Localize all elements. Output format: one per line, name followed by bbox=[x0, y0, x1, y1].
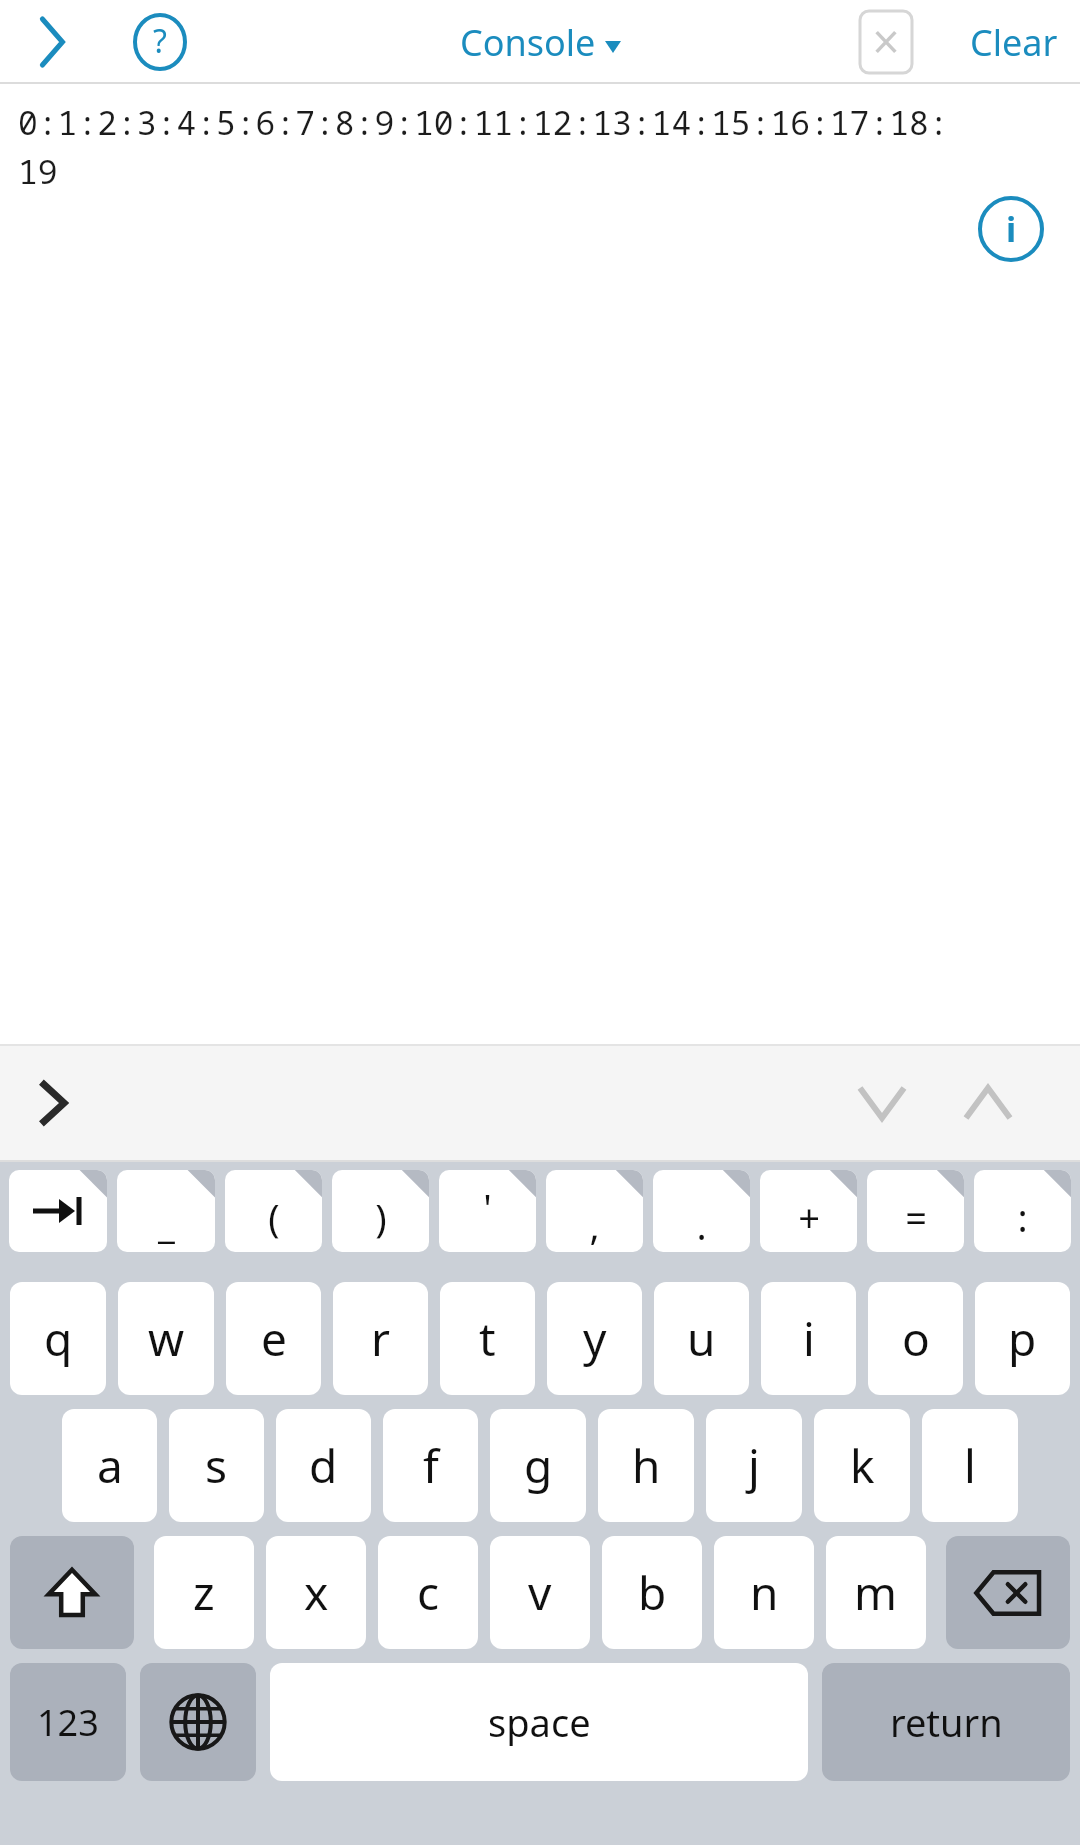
staticText: d bbox=[309, 1434, 338, 1497]
staticText: Console bbox=[460, 18, 596, 67]
staticText: k bbox=[850, 1434, 875, 1497]
button[interactable]: . bbox=[653, 1170, 750, 1252]
button[interactable]: Previous bbox=[0, 1044, 1080, 1162]
button[interactable]: Stop bbox=[850, 6, 922, 78]
button[interactable]: u bbox=[654, 1282, 749, 1395]
button[interactable]: j bbox=[706, 1409, 802, 1522]
staticText: l bbox=[964, 1434, 976, 1497]
staticText: m bbox=[854, 1561, 898, 1624]
button[interactable]: Info bbox=[978, 196, 1044, 262]
staticText: a bbox=[97, 1434, 123, 1497]
button[interactable]: Next bbox=[952, 1067, 1024, 1139]
staticText: ( bbox=[268, 1191, 280, 1243]
button[interactable]: t bbox=[440, 1282, 535, 1395]
staticText: u bbox=[687, 1307, 716, 1370]
button[interactable]: : bbox=[974, 1170, 1071, 1252]
button[interactable]: Run script bbox=[14, 3, 90, 81]
button[interactable]: return bbox=[822, 1663, 1070, 1781]
button[interactable]: + bbox=[760, 1170, 857, 1252]
button[interactable]: r bbox=[333, 1282, 428, 1395]
button[interactable]: v bbox=[490, 1536, 590, 1649]
button[interactable]: Switch keyboard bbox=[140, 1663, 256, 1781]
staticText: h bbox=[632, 1434, 661, 1497]
staticText: space bbox=[488, 1696, 591, 1748]
button[interactable]: ) bbox=[332, 1170, 429, 1252]
button[interactable]: ' bbox=[439, 1170, 536, 1252]
staticText: . bbox=[696, 1199, 707, 1251]
button[interactable]: x bbox=[266, 1536, 366, 1649]
staticText: g bbox=[524, 1434, 553, 1497]
button[interactable]: g bbox=[490, 1409, 586, 1522]
button[interactable]: Console bbox=[460, 18, 621, 67]
button[interactable]: f bbox=[383, 1409, 478, 1522]
staticText: Clear bbox=[970, 18, 1058, 67]
button[interactable]: = bbox=[867, 1170, 964, 1252]
button[interactable]: space bbox=[270, 1663, 808, 1781]
staticText: , bbox=[589, 1199, 600, 1251]
staticText: t bbox=[479, 1307, 496, 1370]
staticText: ? bbox=[153, 19, 167, 63]
button[interactable]: i bbox=[761, 1282, 856, 1395]
button[interactable]: a bbox=[62, 1409, 157, 1522]
staticText: z bbox=[193, 1561, 215, 1624]
staticText: x bbox=[304, 1561, 329, 1624]
button[interactable]: d bbox=[276, 1409, 371, 1522]
button[interactable]: p bbox=[975, 1282, 1070, 1395]
button[interactable]: m bbox=[826, 1536, 926, 1649]
button[interactable]: Help bbox=[122, 3, 198, 81]
staticText: w bbox=[148, 1307, 185, 1370]
button[interactable]: l bbox=[922, 1409, 1018, 1522]
staticText: s bbox=[205, 1434, 228, 1497]
button[interactable]: Previous bbox=[846, 1067, 918, 1139]
button[interactable]: z bbox=[154, 1536, 254, 1649]
staticText: i bbox=[1006, 206, 1017, 252]
button[interactable]: w bbox=[118, 1282, 214, 1395]
staticText: n bbox=[750, 1561, 779, 1624]
staticText: + bbox=[798, 1191, 820, 1243]
staticText: ' bbox=[483, 1181, 492, 1233]
staticText: f bbox=[423, 1434, 439, 1497]
button[interactable]: ( bbox=[225, 1170, 322, 1252]
button[interactable]: Shift bbox=[10, 1536, 134, 1649]
button[interactable]: q bbox=[10, 1282, 106, 1395]
staticText: b bbox=[638, 1561, 667, 1624]
staticText: c bbox=[417, 1561, 440, 1624]
staticText: q bbox=[44, 1307, 73, 1370]
staticText: _ bbox=[158, 1197, 175, 1249]
button[interactable]: y bbox=[547, 1282, 642, 1395]
button[interactable]: h bbox=[598, 1409, 694, 1522]
staticText: y bbox=[583, 1307, 607, 1370]
button[interactable] bbox=[9, 1170, 107, 1252]
staticText: r bbox=[371, 1307, 390, 1370]
staticText: ) bbox=[375, 1191, 387, 1243]
staticText: 0:1:2:3:4:5:6:7:8:9:10:11:12:13:14:15:16… bbox=[18, 100, 949, 193]
button[interactable]: k bbox=[814, 1409, 910, 1522]
button[interactable]: o bbox=[868, 1282, 963, 1395]
staticText: i bbox=[803, 1307, 815, 1370]
button[interactable]: Backspace bbox=[946, 1536, 1070, 1649]
button[interactable]: , bbox=[546, 1170, 643, 1252]
button[interactable]: b bbox=[602, 1536, 702, 1649]
button[interactable]: n bbox=[714, 1536, 814, 1649]
staticText: = bbox=[905, 1191, 927, 1243]
staticText: j bbox=[748, 1434, 760, 1497]
staticText: e bbox=[261, 1307, 287, 1370]
button[interactable]: Clear bbox=[948, 4, 1080, 81]
button[interactable]: c bbox=[378, 1536, 478, 1649]
staticText: 123 bbox=[37, 1698, 99, 1747]
button[interactable]: e bbox=[226, 1282, 321, 1395]
staticText: o bbox=[902, 1307, 930, 1370]
staticText: return bbox=[890, 1696, 1003, 1748]
button[interactable]: _ bbox=[117, 1170, 215, 1252]
staticText: p bbox=[1008, 1307, 1037, 1370]
button[interactable]: 123 bbox=[10, 1663, 126, 1781]
button[interactable]: s bbox=[169, 1409, 264, 1522]
staticText: v bbox=[528, 1561, 552, 1624]
staticText: : bbox=[1017, 1191, 1028, 1243]
